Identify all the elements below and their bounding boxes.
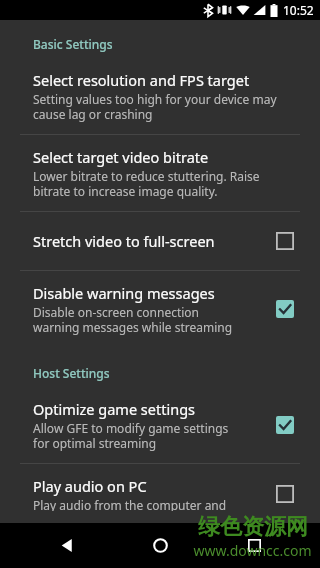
staticText: Select target video bitrate xyxy=(33,147,209,167)
button[interactable]: Recents xyxy=(226,523,282,568)
button[interactable]: Disable warning messages xyxy=(0,271,320,347)
button[interactable]: Optimize game settings xyxy=(0,387,320,463)
button[interactable]: Unchecked xyxy=(270,479,300,509)
button[interactable]: Select target video bitrate xyxy=(0,135,320,211)
staticText: Stretch video to full-screen xyxy=(33,231,215,251)
staticText: Basic Settings xyxy=(33,36,113,52)
staticText: Setting values too high for your device … xyxy=(33,91,277,122)
staticText: 10:52 xyxy=(283,2,314,18)
staticText: Optimize game settings xyxy=(33,399,195,419)
staticText: Play audio on PC xyxy=(33,476,147,496)
staticText: Host Settings xyxy=(33,365,110,381)
staticText: Lower bitrate to reduce stuttering. Rais… xyxy=(33,168,260,199)
button[interactable]: Unchecked xyxy=(270,226,300,256)
button[interactable]: Play audio on PC xyxy=(0,464,320,523)
button[interactable]: Stretch video to full-screen xyxy=(0,212,320,270)
staticText: Play audio from the computer and not you… xyxy=(33,497,227,511)
button[interactable]: Checked xyxy=(270,294,300,324)
staticText: 绿色资源网 xyxy=(198,513,308,541)
button[interactable]: Select resolution and FPS target xyxy=(0,58,320,134)
button[interactable]: Back xyxy=(38,523,94,568)
staticText: Select resolution and FPS target xyxy=(33,70,250,90)
staticText: Disable warning messages xyxy=(33,283,215,303)
staticText: Allow GFE to modify game settings for op… xyxy=(33,420,229,451)
button[interactable]: Checked xyxy=(270,410,300,440)
button[interactable]: Home xyxy=(132,523,188,568)
staticText: www.downcc.com xyxy=(193,541,312,560)
staticText: Disable on-screen connection warning mes… xyxy=(33,304,233,335)
